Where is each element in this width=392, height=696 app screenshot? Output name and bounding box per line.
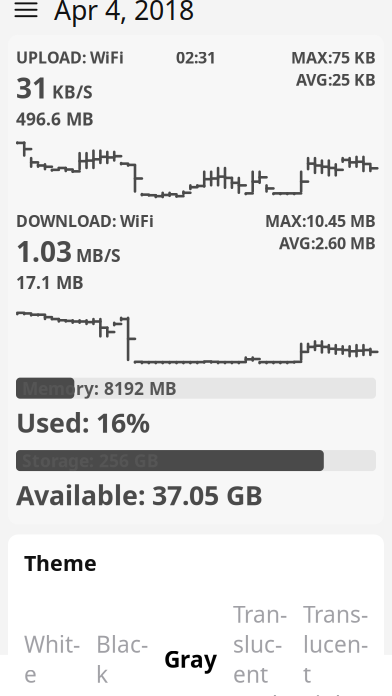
staticText: Used: 16% (16, 405, 150, 440)
staticText: Memory: 8192 MB (22, 377, 177, 400)
staticText: 496.6 MB (16, 107, 94, 130)
staticText: Storage: 256 GB (22, 449, 159, 472)
staticText: Black (96, 629, 148, 689)
staticText: 31 (16, 69, 48, 106)
staticText: 02:31 (176, 47, 216, 68)
staticText: AVG:2.60 MB (279, 232, 376, 254)
staticText: DOWNLOAD: WiFi (16, 210, 154, 231)
staticText: Gray (164, 644, 217, 674)
staticText: 17.1 MB (16, 271, 84, 294)
button[interactable]: White (24, 629, 80, 689)
staticText: MAX:75 KB (291, 47, 376, 68)
staticText: 1.03 (16, 232, 72, 270)
staticText: Available: 37.05 GB (16, 477, 263, 512)
button[interactable]: Menu (4, 0, 48, 32)
staticText: UPLOAD: WiFi (16, 47, 124, 68)
staticText: Translucent Light (303, 599, 368, 696)
staticText: KB/S (52, 80, 93, 103)
button[interactable]: Black (96, 629, 148, 689)
button[interactable]: Translucent Light (303, 599, 368, 696)
staticText: White (24, 629, 80, 689)
button[interactable]: Translucent Dark (233, 599, 287, 696)
staticText: MB/S (76, 244, 121, 267)
staticText: MAX:10.45 MB (265, 210, 376, 231)
staticText: Apr 4, 2018 (54, 0, 194, 27)
staticText: Theme (24, 548, 97, 577)
staticText: Translucent Dark (233, 599, 287, 696)
button[interactable]: Gray (164, 644, 217, 674)
staticText: AVG:25 KB (296, 69, 376, 90)
